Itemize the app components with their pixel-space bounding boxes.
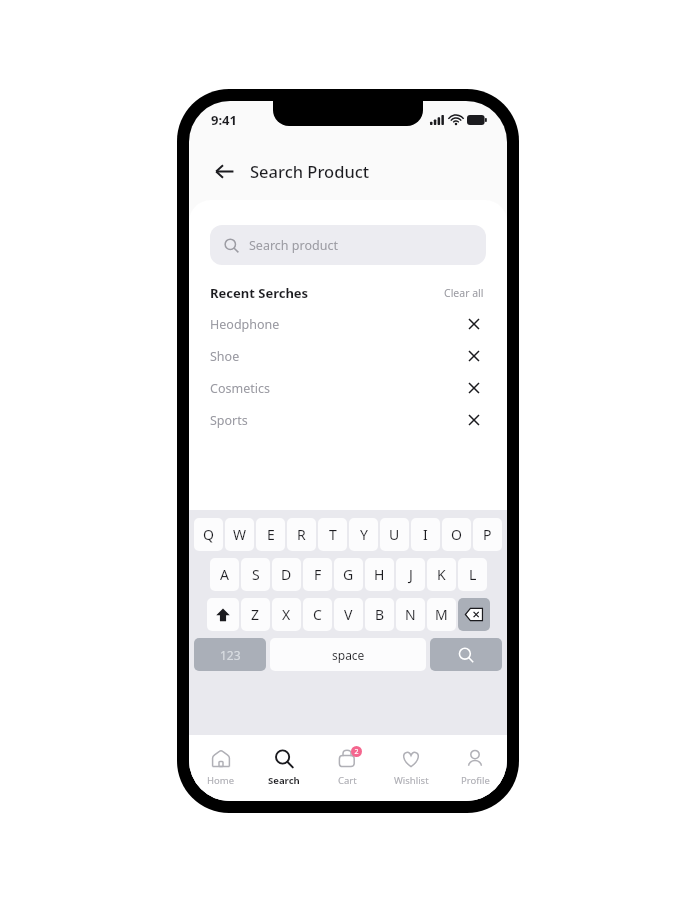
button[interactable]: 2: [315, 735, 379, 801]
staticText: Sports: [210, 412, 248, 429]
button[interactable]: X: [272, 598, 301, 631]
staticText: Cart: [338, 774, 357, 787]
button[interactable]: N: [396, 598, 425, 631]
button[interactable]: G: [334, 558, 363, 591]
button[interactable]: Remove Heodphone: [462, 312, 486, 336]
staticText: Search product: [249, 237, 338, 254]
button[interactable]: Heodphone: [210, 308, 486, 340]
button[interactable]: D: [272, 558, 301, 591]
button[interactable]: Shoe: [210, 340, 486, 372]
staticText: 9:41: [211, 111, 237, 129]
staticText: Recent Serches: [210, 284, 309, 302]
button[interactable]: T: [318, 518, 347, 551]
button[interactable]: C: [303, 598, 332, 631]
button[interactable]: I: [411, 518, 440, 551]
staticText: D: [281, 565, 292, 584]
staticText: Profile: [461, 774, 490, 787]
staticText: F: [314, 565, 322, 584]
button[interactable]: space: [270, 638, 426, 671]
staticText: C: [313, 605, 322, 624]
staticText: B: [375, 605, 385, 624]
button[interactable]: O: [442, 518, 471, 551]
staticText: O: [451, 525, 462, 544]
staticText: Search Product: [250, 160, 370, 182]
staticText: 123: [220, 647, 241, 663]
button[interactable]: F: [303, 558, 332, 591]
staticText: space: [332, 647, 365, 663]
button[interactable]: E: [256, 518, 285, 551]
staticText: U: [389, 525, 400, 544]
button[interactable]: B: [365, 598, 394, 631]
staticText: W: [233, 525, 247, 544]
staticText: I: [423, 525, 428, 544]
staticText: H: [374, 565, 385, 584]
button[interactable]: R: [287, 518, 316, 551]
button[interactable]: K: [427, 558, 456, 591]
button[interactable]: Y: [349, 518, 378, 551]
button[interactable]: M: [427, 598, 456, 631]
staticText: Y: [360, 525, 368, 544]
button[interactable]: Cosmetics: [210, 372, 486, 404]
staticText: Shoe: [210, 348, 240, 365]
staticText: V: [344, 605, 353, 624]
staticText: A: [220, 565, 229, 584]
staticText: L: [469, 565, 477, 584]
staticText: Heodphone: [210, 316, 280, 333]
staticText: X: [282, 605, 291, 624]
button[interactable]: Home: [189, 735, 252, 801]
button[interactable]: Clear all: [442, 284, 486, 302]
button[interactable]: Search: [430, 638, 502, 671]
button[interactable]: P: [473, 518, 502, 551]
staticText: P: [483, 525, 492, 544]
staticText: Clear all: [444, 286, 484, 300]
button[interactable]: U: [380, 518, 409, 551]
staticText: Z: [251, 605, 260, 624]
staticText: 2: [354, 747, 359, 757]
button[interactable]: Q: [194, 518, 223, 551]
button[interactable]: Back: [209, 156, 239, 186]
staticText: K: [437, 565, 446, 584]
button[interactable]: W: [225, 518, 254, 551]
button[interactable]: Search: [252, 735, 315, 801]
staticText: Wishlist: [394, 774, 429, 787]
staticText: Q: [203, 525, 214, 544]
staticText: G: [343, 565, 354, 584]
button[interactable]: L: [458, 558, 487, 591]
button[interactable]: Z: [241, 598, 270, 631]
staticText: M: [435, 605, 448, 624]
staticText: Search: [268, 774, 300, 787]
button[interactable]: J: [396, 558, 425, 591]
staticText: Home: [207, 774, 235, 787]
staticText: N: [405, 605, 416, 624]
button[interactable]: Sports: [210, 404, 486, 436]
button[interactable]: H: [365, 558, 394, 591]
button[interactable]: Wishlist: [379, 735, 443, 801]
staticText: J: [409, 565, 413, 584]
button[interactable]: 123: [194, 638, 266, 671]
staticText: Cosmetics: [210, 380, 270, 397]
staticText: E: [267, 525, 275, 544]
button[interactable]: Profile: [443, 735, 507, 801]
button[interactable]: Search product: [210, 225, 486, 265]
button[interactable]: A: [210, 558, 239, 591]
button[interactable]: Remove Shoe: [462, 344, 486, 368]
staticText: R: [297, 525, 306, 544]
button[interactable]: Remove Cosmetics: [462, 376, 486, 400]
button[interactable]: Backspace: [458, 598, 490, 631]
button[interactable]: S: [241, 558, 270, 591]
button[interactable]: Shift: [207, 598, 239, 631]
staticText: T: [329, 525, 337, 544]
button[interactable]: Remove Sports: [462, 408, 486, 432]
staticText: S: [252, 565, 260, 584]
button[interactable]: V: [334, 598, 363, 631]
